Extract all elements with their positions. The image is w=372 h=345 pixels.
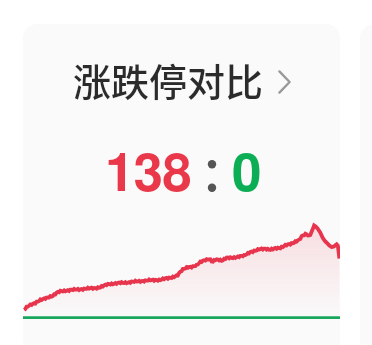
staticText: 涨跌停对比 (73, 52, 264, 107)
staticText: 0 (232, 131, 262, 207)
button[interactable]: 涨跌停对比 (23, 52, 340, 107)
button[interactable]: 涨跌停对比 (23, 24, 340, 345)
other: View details (278, 70, 291, 94)
staticText: 138 (105, 131, 191, 207)
